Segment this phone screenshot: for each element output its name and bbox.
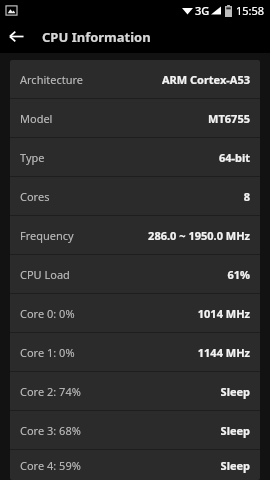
button[interactable]: CPU Load <box>10 255 260 293</box>
staticText: Core 1: 0% <box>20 345 197 360</box>
staticText: MT6755 <box>208 111 250 126</box>
staticText: Core 2: 74% <box>20 384 220 399</box>
staticText: CPU Information <box>42 28 151 46</box>
button[interactable]: Core 0: 0% <box>10 294 260 332</box>
staticText: Core 0: 0% <box>20 306 197 321</box>
button[interactable]: Architecture <box>10 60 260 98</box>
button[interactable]: Model <box>10 99 260 137</box>
staticText: 61% <box>227 267 250 282</box>
button[interactable]: Core 3: 68% <box>10 411 260 449</box>
staticText: CPU Load <box>20 267 227 282</box>
staticText: Type <box>20 150 218 165</box>
staticText: Cores <box>20 189 243 204</box>
staticText: Sleep <box>220 423 250 438</box>
button[interactable]: Cores <box>10 177 260 215</box>
staticText: Core 3: 68% <box>20 423 220 438</box>
button[interactable]: Core 4: 59% <box>10 450 260 480</box>
staticText: Model <box>20 111 208 126</box>
staticText: Frequency <box>20 228 148 243</box>
button[interactable]: Core 1: 0% <box>10 333 260 371</box>
staticText: Sleep <box>220 458 250 473</box>
staticText: 64-bit <box>218 150 250 165</box>
staticText: ARM Cortex-A53 <box>161 72 250 87</box>
staticText: 15:58 <box>236 3 265 18</box>
button[interactable]: Back <box>0 20 33 53</box>
button[interactable]: Frequency <box>10 216 260 254</box>
staticText: Sleep <box>220 384 250 399</box>
staticText: Core 4: 59% <box>20 458 220 473</box>
staticText: 3G <box>195 3 210 18</box>
staticText: 1144 MHz <box>197 345 250 360</box>
button[interactable]: Core 2: 74% <box>10 372 260 410</box>
staticText: 286.0 ~ 1950.0 MHz <box>148 228 250 243</box>
staticText: Architecture <box>20 72 161 87</box>
staticText: 1014 MHz <box>197 306 250 321</box>
staticText: 8 <box>243 189 250 204</box>
button[interactable]: Type <box>10 138 260 176</box>
